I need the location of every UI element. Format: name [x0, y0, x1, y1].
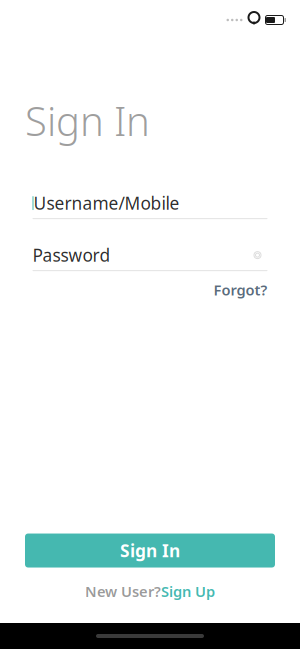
staticText: Sign In	[120, 539, 180, 562]
button[interactable]: Forgot?	[213, 280, 267, 300]
staticText: Username/Mobile	[33, 192, 179, 215]
staticText: Forgot?	[213, 280, 267, 300]
staticText: New User?	[85, 581, 161, 601]
staticText: Password	[32, 244, 110, 267]
staticText: Sign Up	[161, 581, 215, 601]
button[interactable]: Sign In	[25, 533, 275, 567]
button[interactable]: New User?	[85, 581, 215, 601]
button[interactable]: Show password	[247, 247, 267, 263]
staticText: Sign In	[25, 94, 150, 147]
